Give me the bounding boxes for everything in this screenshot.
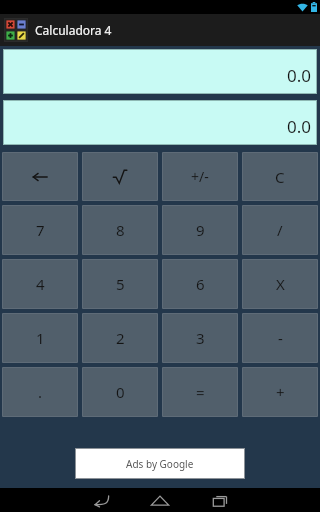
button[interactable]: Home [130, 488, 190, 512]
staticText: - [278, 328, 283, 348]
button[interactable]: Backspace [3, 153, 77, 200]
button[interactable]: 9 [163, 206, 237, 254]
button[interactable]: 0.0 [4, 50, 316, 93]
staticText: 2 [116, 328, 125, 348]
button[interactable]: 0.0 [4, 101, 316, 144]
staticText: 3 [196, 328, 205, 348]
button[interactable]: 6 [163, 260, 237, 308]
staticText: . [38, 382, 43, 402]
button[interactable]: 1 [3, 314, 77, 362]
button[interactable]: = [163, 368, 237, 416]
staticText: 0.0 [286, 115, 311, 138]
button[interactable]: Ads by Google [76, 449, 244, 478]
button[interactable]: C [243, 153, 317, 200]
staticText: Ads by Google [126, 457, 194, 471]
button[interactable]: / [243, 206, 317, 254]
button[interactable]: X [243, 260, 317, 308]
button[interactable]: 0 [83, 368, 157, 416]
staticText: Calculadora 4 [35, 22, 112, 38]
button[interactable]: 4 [3, 260, 77, 308]
staticText: C [275, 167, 285, 187]
staticText: = [196, 382, 205, 402]
staticText: 7 [36, 220, 45, 240]
staticText: 0 [116, 382, 125, 402]
button[interactable]: + [243, 368, 317, 416]
button[interactable]: 7 [3, 206, 77, 254]
staticText: + [276, 382, 285, 402]
staticText: 9 [196, 220, 205, 240]
button[interactable]: 5 [83, 260, 157, 308]
staticText: 8 [116, 220, 125, 240]
button[interactable]: Square root [83, 153, 157, 200]
staticText: +/- [191, 167, 209, 186]
button[interactable]: Back [70, 488, 130, 512]
staticText: 1 [36, 328, 45, 348]
staticText: / [277, 220, 283, 240]
button[interactable]: 8 [83, 206, 157, 254]
button[interactable]: Recent apps [190, 488, 250, 512]
button[interactable]: 2 [83, 314, 157, 362]
staticText: 0.0 [286, 64, 311, 87]
staticText: 6 [196, 274, 205, 294]
staticText: 4 [36, 274, 45, 294]
staticText: 5 [116, 274, 125, 294]
button[interactable]: 3 [163, 314, 237, 362]
staticText: X [276, 274, 285, 294]
button[interactable]: Toggle sign [163, 153, 237, 200]
